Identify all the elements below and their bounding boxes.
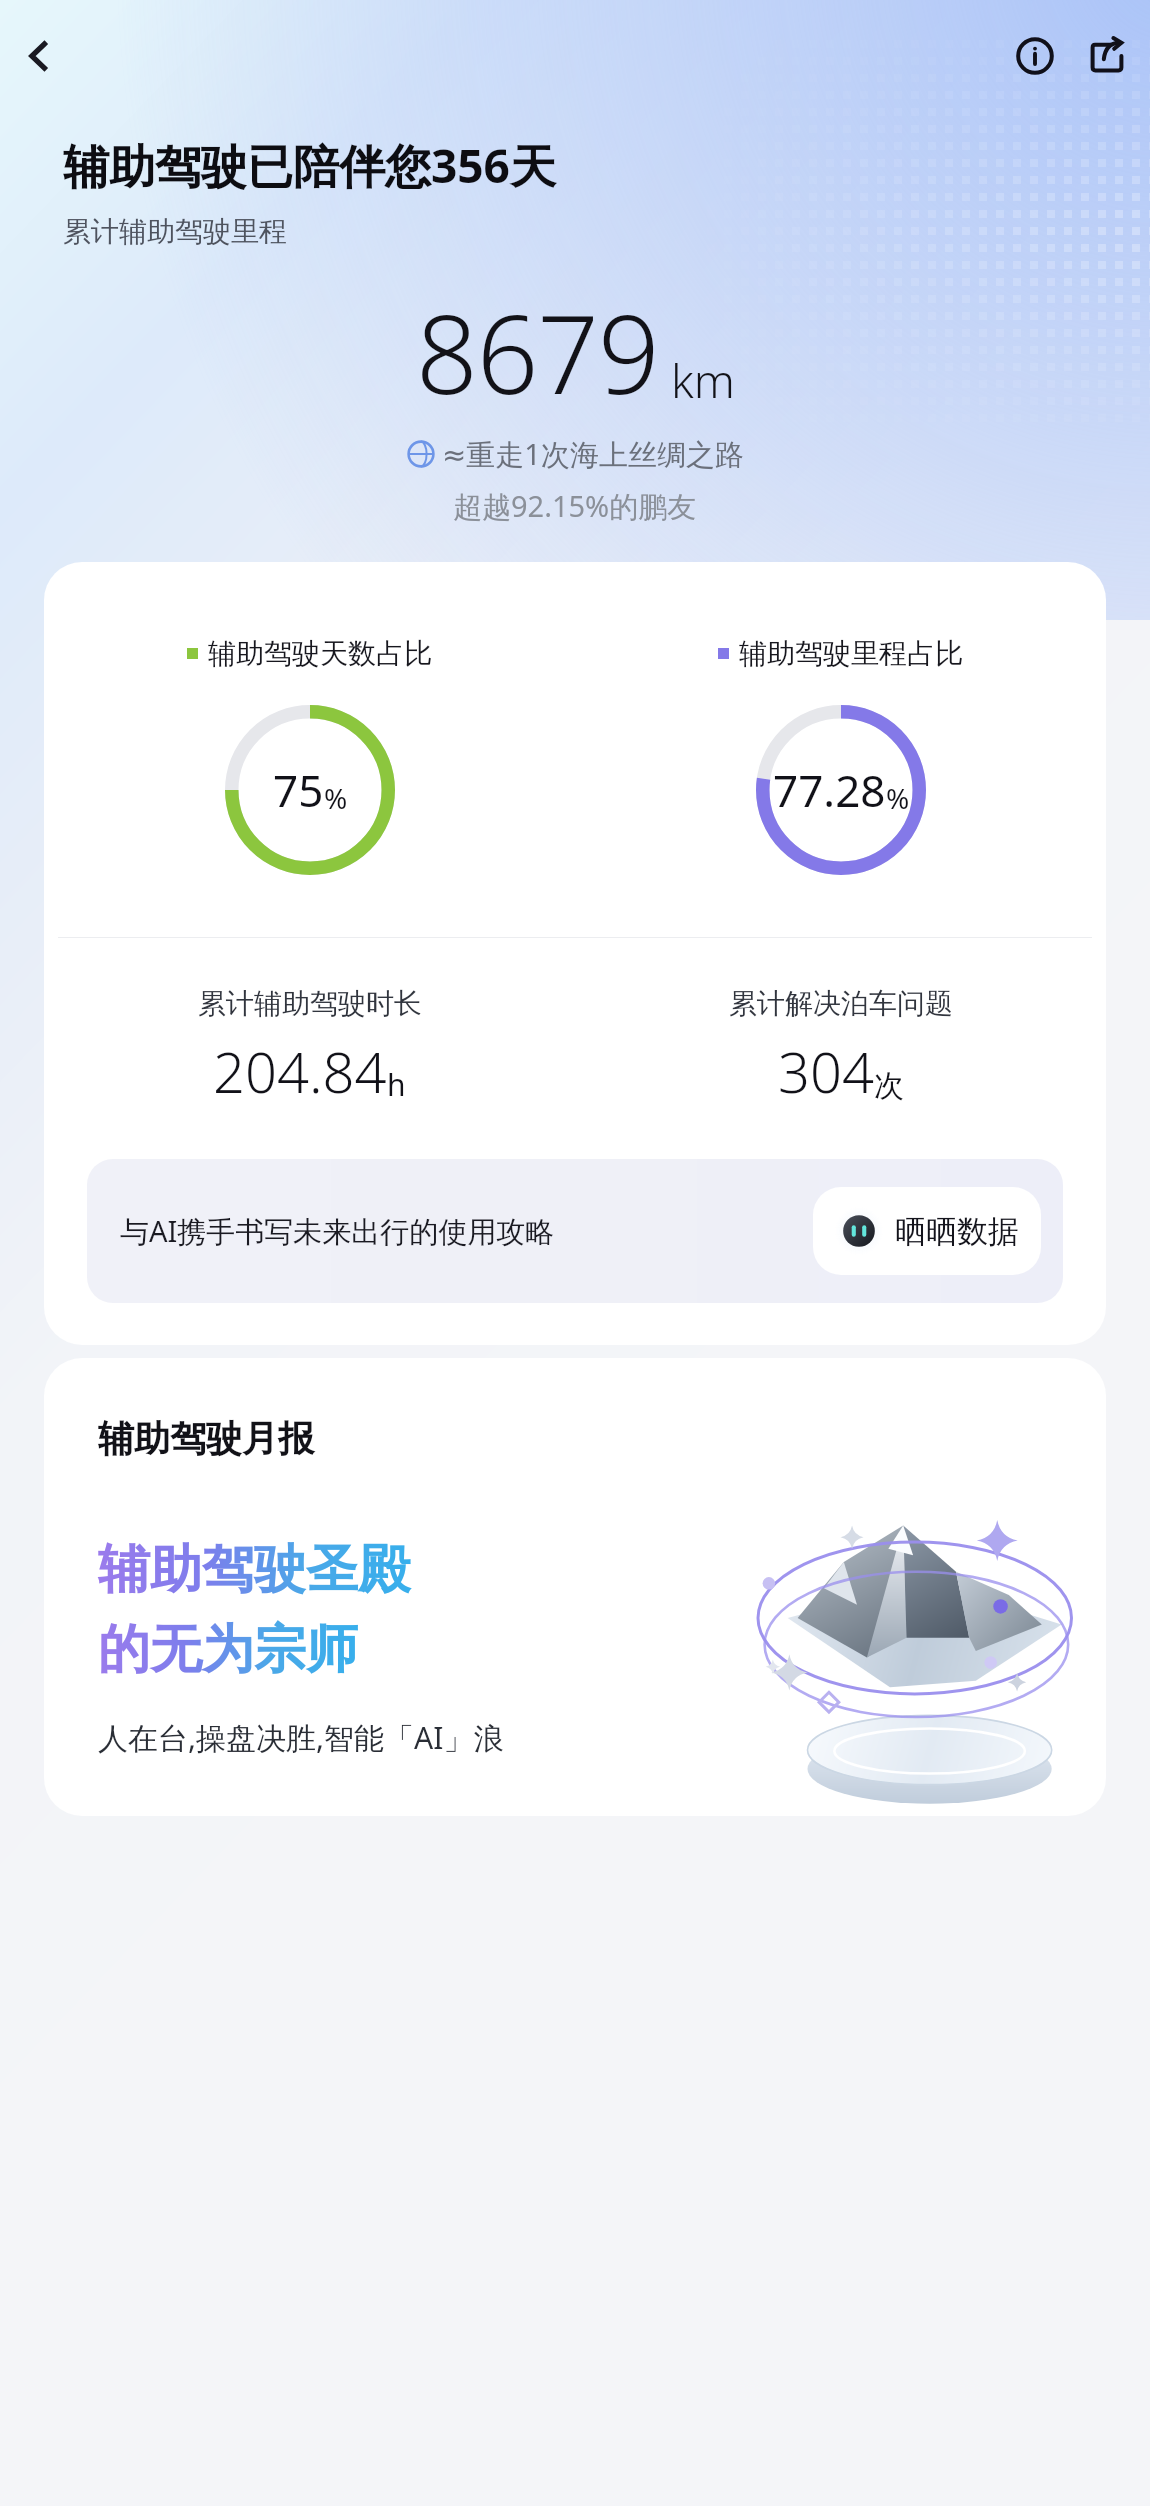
staticText: 累计辅助驾驶里程 [63, 214, 287, 249]
staticText: 辅助驾驶天数占比 [208, 636, 432, 671]
staticText: 累计解决泊车问题 [729, 986, 953, 1021]
staticText: 次 [874, 1067, 904, 1105]
staticText: 77.28 [773, 760, 886, 820]
staticText: 累计辅助驾驶时长 [198, 986, 422, 1021]
staticText: h [387, 1064, 406, 1105]
staticText: 辅助驾驶已陪伴您356天 [63, 134, 556, 197]
staticText: 超越92.15%的鹏友 [453, 486, 697, 526]
staticText: 204.84 [213, 1033, 387, 1109]
staticText: 人在台,操盘决胜,智能「AI」浪 [98, 1717, 504, 1758]
staticText: 辅助驾驶月报 [98, 1416, 314, 1461]
staticText: % [886, 779, 910, 817]
button[interactable]: 辅助驾驶月报 [44, 1358, 1106, 1816]
staticText: 与AI携手书写未来出行的使用攻略 [120, 1211, 795, 1251]
button[interactable]: Back [10, 27, 68, 85]
staticText: 辅助驾驶圣殿 [98, 1537, 410, 1603]
staticText: 75 [273, 760, 324, 820]
button[interactable]: Share [1078, 27, 1136, 85]
staticText: 辅助驾驶里程占比 [739, 636, 963, 671]
staticText: 304 [778, 1033, 874, 1109]
staticText: 的无为宗师 [98, 1617, 358, 1683]
staticText: % [324, 779, 348, 817]
button[interactable]: 晒晒数据 [813, 1187, 1041, 1275]
staticText: 8679 [416, 279, 659, 426]
staticText: km [671, 349, 735, 412]
button[interactable]: 与AI携手书写未来出行的使用攻略 [87, 1159, 1063, 1303]
button[interactable]: Information [1006, 27, 1064, 85]
staticText: 晒晒数据 [895, 1212, 1019, 1251]
staticText: ≈重走1次海上丝绸之路 [442, 434, 744, 474]
